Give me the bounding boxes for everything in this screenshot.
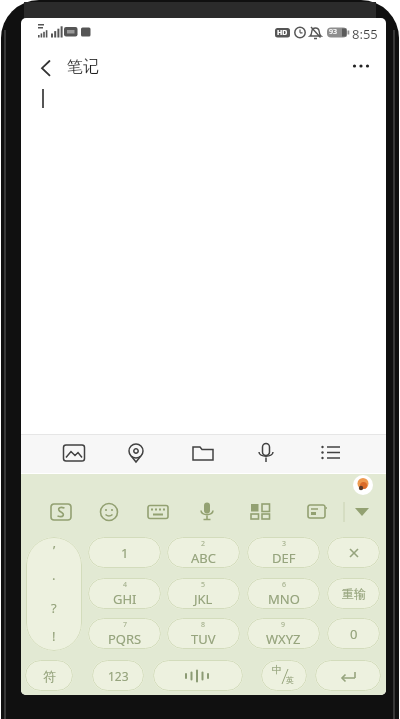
button[interactable] (353, 475, 373, 495)
button[interactable] (93, 496, 125, 528)
staticText: ’ (53, 541, 56, 559)
button[interactable]: 5 (167, 578, 240, 609)
staticText: 重输 (342, 586, 366, 601)
staticText: WXYZ (266, 630, 301, 648)
staticText: 9 (281, 620, 286, 630)
staticText: 123 (108, 668, 129, 684)
button[interactable]: 符 (25, 660, 73, 691)
button[interactable]: 6 (247, 578, 320, 609)
button[interactable]: ’ (26, 537, 82, 651)
staticText: 6 (282, 580, 287, 590)
staticText: ? (51, 599, 57, 617)
staticText: GHI (113, 590, 137, 608)
staticText: ABC (191, 549, 216, 567)
button[interactable] (315, 660, 381, 691)
button[interactable]: 7 (88, 618, 161, 649)
button[interactable] (186, 436, 220, 470)
staticText: 中 (272, 663, 282, 676)
button[interactable]: 2 (167, 537, 240, 568)
button[interactable] (347, 52, 375, 80)
staticText: HD (277, 28, 288, 38)
button[interactable] (327, 537, 380, 568)
button[interactable]: 0 (327, 618, 380, 649)
staticText: 7 (123, 620, 128, 630)
button[interactable] (31, 54, 59, 82)
staticText: 1 (121, 544, 129, 562)
button[interactable] (57, 436, 91, 470)
staticText: MNO (268, 590, 300, 608)
button[interactable] (244, 496, 276, 528)
staticText: ! (52, 627, 56, 645)
staticText: TUV (191, 630, 216, 648)
staticText: 0 (350, 625, 358, 643)
button[interactable]: 重输 (327, 578, 380, 609)
button[interactable]: 1 (88, 537, 161, 568)
button[interactable] (191, 496, 223, 528)
staticText: 3 (282, 539, 287, 549)
button[interactable] (153, 660, 243, 691)
staticText: 英 (286, 675, 294, 685)
button[interactable] (301, 496, 333, 528)
staticText: 8 (201, 620, 206, 630)
button[interactable] (142, 496, 174, 528)
staticText: · (52, 570, 56, 588)
button[interactable]: 9 (247, 618, 320, 649)
button[interactable]: 笔记 (67, 57, 99, 77)
staticText: 8:55 (352, 25, 378, 43)
button[interactable]: 3 (247, 537, 320, 568)
button[interactable]: 4 (88, 578, 161, 609)
button[interactable] (249, 436, 283, 470)
button[interactable]: 8 (167, 618, 240, 649)
staticText: 符 (43, 668, 56, 684)
button[interactable]: 中 (261, 660, 307, 691)
button[interactable] (45, 496, 77, 528)
staticText: DEF (272, 549, 296, 567)
staticText: PQRS (108, 630, 142, 648)
staticText: 93 (329, 27, 338, 37)
button[interactable] (119, 436, 153, 470)
staticText: 4 (123, 580, 128, 590)
staticText: 5 (201, 580, 206, 590)
staticText: JKL (194, 590, 213, 608)
button[interactable]: 123 (92, 660, 144, 691)
button[interactable] (314, 436, 348, 470)
staticText: 2 (201, 539, 206, 549)
